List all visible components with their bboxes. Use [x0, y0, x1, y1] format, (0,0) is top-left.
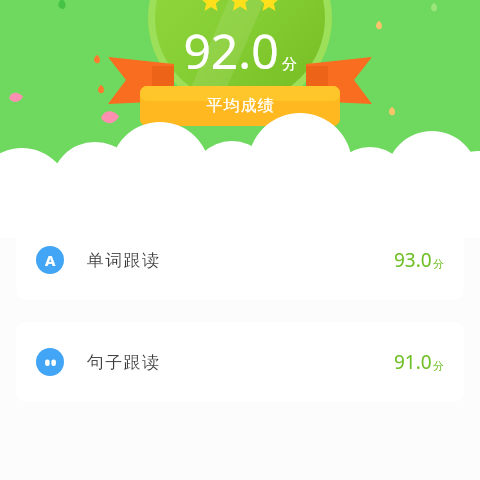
button[interactable]: 句子跟读 91.0 分 [16, 322, 464, 402]
staticText: A [45, 250, 56, 270]
staticText: 92.0 [183, 18, 279, 83]
staticText: 平均成绩 [206, 96, 274, 116]
staticText: 分 [433, 359, 444, 373]
staticText: 句子跟读 [86, 352, 160, 373]
staticText: 91.0 [394, 349, 432, 375]
staticText: 分 [282, 55, 297, 74]
staticText: 单词跟读 [86, 250, 160, 271]
staticText: 93.0 [394, 247, 432, 273]
button[interactable]: 单词跟读 93.0 分 [16, 220, 464, 300]
staticText: 分 [433, 257, 444, 271]
